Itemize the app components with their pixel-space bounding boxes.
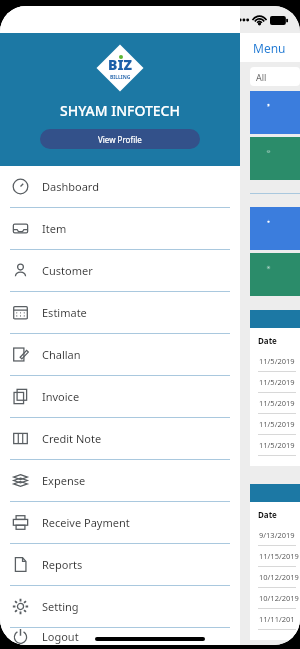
button[interactable]: Tile	[250, 137, 300, 180]
staticText: All	[256, 71, 267, 83]
button[interactable]: Challan	[0, 334, 240, 375]
staticText: Date	[258, 335, 277, 346]
button[interactable]: Receive Payment	[0, 502, 240, 543]
button[interactable]: Menu	[253, 40, 286, 56]
staticText: View Profile	[98, 134, 142, 145]
button[interactable]: Tile	[250, 207, 300, 250]
staticText: Setting	[42, 599, 79, 614]
button[interactable]: Item	[0, 208, 240, 249]
button[interactable]: All	[250, 67, 300, 86]
button[interactable]: Expense	[0, 460, 240, 501]
staticText: Credit Note	[42, 431, 102, 446]
staticText: Receive Payment	[42, 515, 130, 530]
staticText: 9/13/2019	[259, 530, 295, 540]
staticText: 11/5/2019	[259, 398, 295, 408]
staticText: 10/12/2019	[259, 593, 299, 603]
staticText: BIZ	[108, 55, 133, 74]
staticText: 11/5/2019	[259, 440, 295, 450]
staticText: Challan	[42, 347, 81, 362]
button[interactable]: Tile	[250, 91, 300, 134]
staticText: 11/5/2019	[259, 377, 295, 387]
staticText: Item	[42, 221, 67, 236]
staticText: SHYAM INFOTECH	[60, 101, 180, 120]
staticText: Dashboard	[42, 179, 99, 194]
staticText: Reports	[42, 557, 83, 572]
button[interactable]: Reports	[0, 544, 240, 585]
staticText: 11/15/2019	[259, 551, 299, 561]
button[interactable]: Invoice	[0, 376, 240, 417]
button[interactable]: Logout	[0, 628, 240, 645]
button[interactable]: Credit Note	[0, 418, 240, 459]
staticText: 11/5/2019	[259, 419, 295, 429]
staticText: 11/5/2019	[259, 356, 295, 366]
button[interactable]: Customer	[0, 250, 240, 291]
staticText: Estimate	[42, 305, 87, 320]
staticText: Customer	[42, 263, 93, 278]
button[interactable]: Tile	[250, 253, 300, 296]
button[interactable]: View Profile	[40, 129, 200, 149]
staticText: Expense	[42, 473, 86, 488]
staticText: BILLING	[110, 74, 131, 81]
button[interactable]: Setting	[0, 586, 240, 627]
staticText: Logout	[42, 629, 79, 644]
button[interactable]: Estimate	[0, 292, 240, 333]
button[interactable]: Dashboard	[0, 166, 240, 207]
staticText: 11/11/201	[259, 614, 295, 624]
staticText: Invoice	[42, 389, 80, 404]
staticText: 10/12/2019	[259, 572, 299, 582]
staticText: Date	[258, 509, 277, 520]
